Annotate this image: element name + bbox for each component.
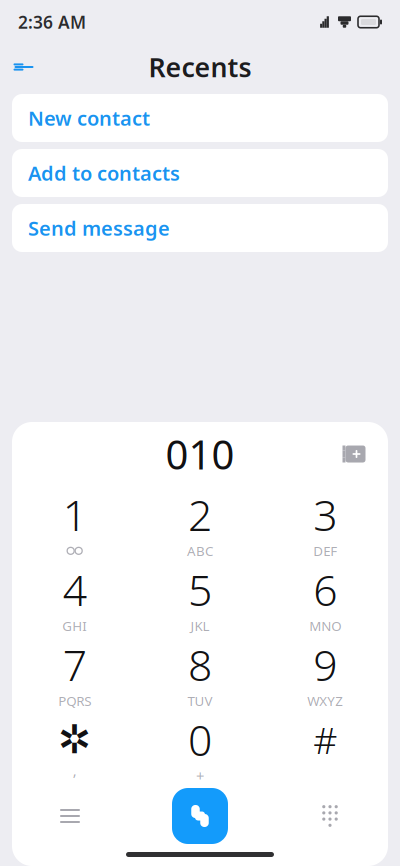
button[interactable]: Delete — [332, 436, 376, 472]
staticText: 9 — [313, 636, 337, 693]
button[interactable]: 1 — [12, 484, 137, 559]
staticText: PQRS — [58, 692, 91, 710]
button[interactable]: 9 — [263, 634, 388, 709]
staticText: 8 — [188, 636, 212, 693]
staticText: 0 — [188, 711, 212, 768]
staticText: Add to contacts — [28, 160, 180, 186]
staticText: 7 — [63, 636, 87, 693]
button[interactable]: 0 — [137, 709, 263, 784]
staticText: 6 — [313, 561, 337, 618]
staticText: 2:36 AM — [18, 10, 86, 33]
button[interactable]: New contact — [12, 94, 388, 142]
button[interactable]: Keypad — [302, 788, 358, 844]
button[interactable]: Add to contacts — [12, 149, 388, 197]
button[interactable]: 6 — [263, 559, 388, 634]
button[interactable]: 2 — [137, 484, 263, 559]
staticText: , — [73, 760, 77, 780]
button[interactable]: 7 — [12, 634, 137, 709]
staticText: ABC — [187, 542, 213, 560]
button[interactable]: 8 — [137, 634, 263, 709]
button[interactable]: Send message — [12, 204, 388, 252]
staticText: Recents — [148, 49, 251, 85]
button[interactable]: 4 — [12, 559, 137, 634]
button[interactable]: # — [263, 709, 388, 784]
staticText: 5 — [188, 561, 212, 618]
staticText: DEF — [313, 542, 337, 560]
staticText: # — [313, 715, 337, 764]
staticText: ✲ — [58, 717, 92, 762]
button[interactable]: Call — [172, 788, 228, 844]
staticText: 2 — [188, 486, 212, 543]
staticText: 3 — [313, 486, 337, 543]
staticText: WXYZ — [307, 692, 343, 710]
button[interactable]: 5 — [137, 559, 263, 634]
staticText: 1 — [63, 486, 87, 543]
button[interactable]: Back — [0, 45, 48, 89]
staticText: TUV — [187, 692, 212, 710]
staticText: MNO — [309, 617, 341, 635]
button[interactable]: Call log — [42, 788, 98, 844]
staticText: Send message — [28, 215, 170, 241]
button[interactable]: 3 — [263, 484, 388, 559]
staticText: New contact — [28, 105, 150, 131]
staticText: GHI — [62, 617, 87, 635]
staticText: 010 — [165, 427, 234, 480]
staticText: + — [196, 766, 204, 786]
staticText: 4 — [63, 561, 87, 618]
staticText: JKL — [190, 617, 209, 635]
button[interactable]: ✲ — [12, 709, 137, 784]
